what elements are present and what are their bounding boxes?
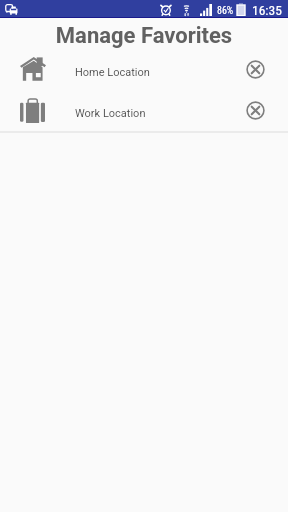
staticText: Home Location	[75, 66, 150, 79]
staticText: Manage Favorites	[0, 23, 288, 49]
staticText: Work Location	[75, 107, 146, 120]
button[interactable]: Home Location	[0, 48, 288, 89]
button[interactable]: Remove Work Location	[240, 95, 270, 125]
staticText: 16:35	[252, 2, 282, 18]
button[interactable]: Work Location	[0, 89, 288, 130]
staticText: 86%	[217, 5, 234, 17]
button[interactable]: Remove Home Location	[240, 54, 270, 84]
